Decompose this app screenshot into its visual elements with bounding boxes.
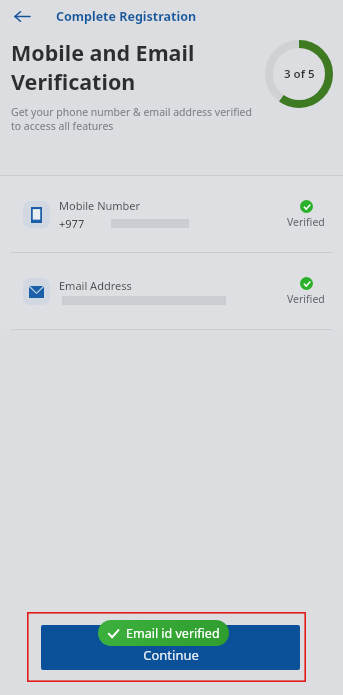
staticText: 3 of 5 [284, 66, 315, 82]
staticText: +977 [59, 216, 85, 231]
button[interactable]: Back [8, 2, 36, 30]
staticText: Mobile and Email [11, 38, 195, 67]
staticText: to access all features [11, 119, 114, 133]
button[interactable]: Email Address [0, 253, 343, 329]
staticText: Verified [287, 215, 325, 229]
staticText: Verification [11, 67, 136, 96]
button[interactable]: Continue [41, 625, 300, 670]
staticText: Email id verified [126, 625, 220, 642]
staticText: Continue [143, 646, 199, 664]
staticText: Complete Registration [56, 8, 197, 25]
staticText: Get your phone number & email address ve… [11, 105, 252, 119]
staticText: Email Address [59, 278, 132, 293]
staticText: Mobile Number [59, 198, 141, 213]
button[interactable]: Mobile Number [0, 176, 343, 252]
button[interactable]: Email id verified [98, 620, 229, 646]
staticText: Verified [287, 292, 325, 306]
